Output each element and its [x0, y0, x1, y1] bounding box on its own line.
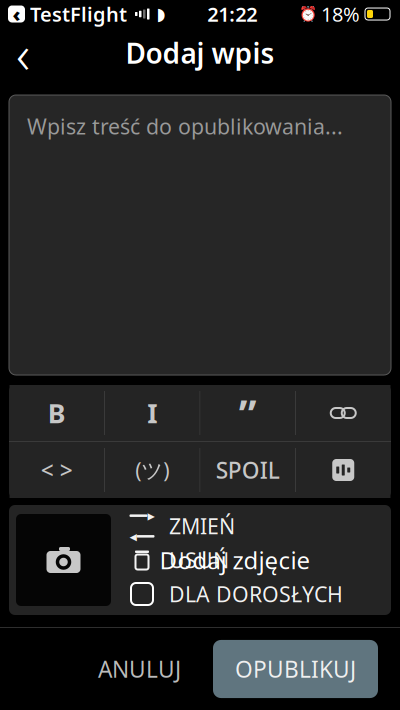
staticText: 18%	[321, 1, 360, 27]
staticText: DLA DOROSŁYCH	[169, 580, 343, 608]
staticText: ▸	[147, 507, 154, 524]
staticText: Dodaj wpis	[125, 34, 274, 72]
staticText: I	[147, 395, 157, 431]
button[interactable]: DLA DOROSŁYCH	[129, 577, 364, 611]
staticText: TestFlight	[30, 1, 127, 27]
button[interactable]: Back	[0, 28, 46, 78]
staticText: ”	[239, 386, 257, 439]
staticText: ◗	[156, 4, 165, 24]
button[interactable]: ANULUJ	[84, 641, 195, 697]
staticText: SPOIL	[216, 455, 280, 485]
button[interactable]: (ツ)	[105, 442, 199, 498]
button[interactable]: B	[9, 385, 104, 441]
staticText: USUŃ	[169, 546, 229, 574]
button[interactable]: Add photo	[16, 514, 111, 606]
staticText: ANULUJ	[98, 654, 181, 684]
staticText: Dodaj zdjęcie	[159, 544, 310, 576]
button[interactable]: USUŃ	[129, 543, 364, 577]
staticText: ZMIEŃ	[169, 512, 235, 540]
staticText: ⏰	[299, 6, 317, 22]
staticText: < >	[41, 455, 73, 485]
staticText: B	[48, 395, 66, 431]
staticText: 21:22	[207, 1, 257, 27]
button[interactable]: ”	[200, 385, 295, 441]
button[interactable]: ▸	[129, 509, 364, 543]
button[interactable]: < >	[9, 442, 104, 498]
button[interactable]	[296, 442, 390, 498]
staticText: ‹	[16, 18, 30, 88]
button[interactable]: SPOIL	[200, 442, 295, 498]
staticText: OPUBLIKUJ	[235, 654, 356, 684]
staticText: ◂	[129, 528, 136, 545]
button[interactable]	[296, 385, 390, 441]
staticText: (ツ)	[135, 456, 169, 484]
button[interactable]: I	[105, 385, 199, 441]
button[interactable]: OPUBLIKUJ	[213, 640, 378, 698]
staticText: ‹	[12, 1, 20, 27]
staticText: Wpisz treść do opublikowania...	[27, 112, 343, 140]
